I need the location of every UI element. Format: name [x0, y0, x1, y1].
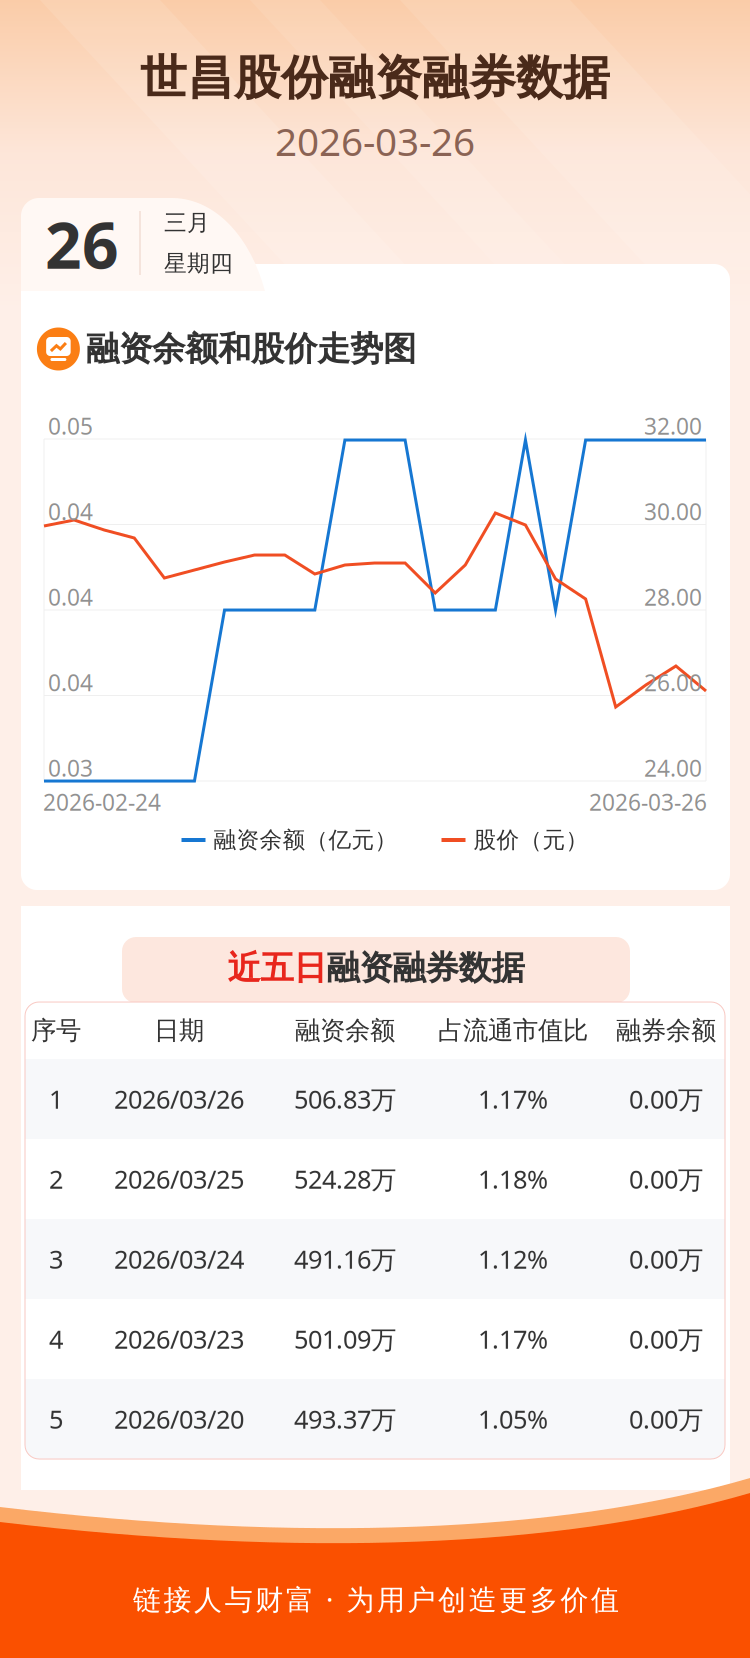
- staticText: 2026/03/24: [114, 1242, 244, 1276]
- staticText: 0.00万: [629, 1082, 703, 1116]
- staticText: 4: [49, 1322, 63, 1356]
- staticText: 融资余额（亿元）: [213, 826, 397, 854]
- staticText: 三月: [164, 209, 210, 236]
- staticText: 24.00: [644, 753, 702, 783]
- staticText: 2: [49, 1162, 63, 1196]
- staticText: 28.00: [644, 582, 702, 612]
- staticText: 序号: [31, 1015, 81, 1046]
- staticText: 2026-02-24: [43, 787, 161, 817]
- staticText: 501.09万: [294, 1322, 396, 1356]
- staticText: 524.28万: [294, 1162, 396, 1196]
- staticText: 0.04: [48, 667, 93, 697]
- staticText: 2026/03/26: [114, 1082, 244, 1116]
- staticText: 5: [49, 1402, 63, 1436]
- staticText: 1.18%: [478, 1162, 548, 1196]
- staticText: 32.00: [644, 411, 702, 441]
- staticText: 1: [49, 1082, 63, 1116]
- staticText: 1.12%: [478, 1242, 548, 1276]
- staticText: 26.00: [644, 667, 702, 697]
- staticText: 融资余额: [295, 1015, 395, 1046]
- staticText: 链接人与财富 · 为用户创造更多价值: [133, 1580, 619, 1618]
- staticText: 0.04: [48, 582, 93, 612]
- staticText: 星期四: [164, 249, 233, 277]
- staticText: 30.00: [644, 496, 702, 526]
- staticText: 2026/03/25: [114, 1162, 244, 1196]
- staticText: 1.05%: [478, 1402, 548, 1436]
- staticText: 2026-03-26: [589, 787, 707, 817]
- staticText: 融券余额: [616, 1015, 716, 1046]
- staticText: 506.83万: [294, 1082, 396, 1116]
- staticText: 2026/03/20: [114, 1402, 244, 1436]
- staticText: 股价（元）: [473, 826, 588, 854]
- staticText: 0.03: [48, 753, 93, 783]
- staticText: 融资融券数据: [326, 947, 524, 988]
- staticText: 1.17%: [478, 1082, 548, 1116]
- staticText: 493.37万: [294, 1402, 396, 1436]
- staticText: 491.16万: [294, 1242, 396, 1276]
- staticText: 日期: [154, 1015, 204, 1046]
- staticText: 0.04: [48, 496, 93, 526]
- staticText: 3: [49, 1242, 63, 1276]
- staticText: 1.17%: [478, 1322, 548, 1356]
- staticText: 占流通市值比: [438, 1015, 588, 1046]
- staticText: 0.00万: [629, 1402, 703, 1436]
- staticText: 世昌股份融资融券数据: [140, 49, 610, 107]
- staticText: 0.05: [48, 411, 93, 441]
- staticText: 2026/03/23: [114, 1322, 244, 1356]
- staticText: 融资余额和股价走势图: [86, 328, 416, 369]
- staticText: 26: [45, 201, 119, 286]
- staticText: 0.00万: [629, 1242, 703, 1276]
- staticText: 0.00万: [629, 1162, 703, 1196]
- staticText: 0.00万: [629, 1322, 703, 1356]
- staticText: 2026-03-26: [275, 115, 475, 167]
- staticText: 近五日: [227, 947, 326, 988]
